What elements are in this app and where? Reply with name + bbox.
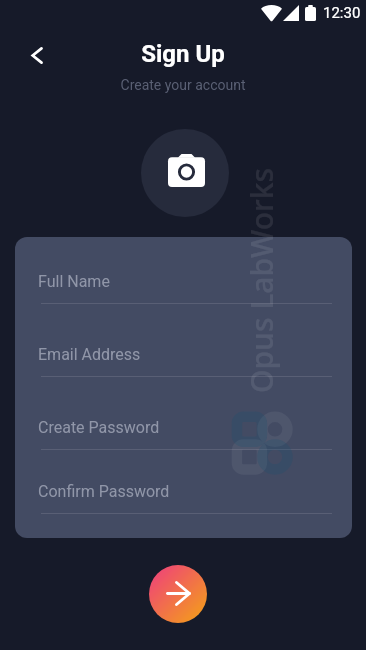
button[interactable]: Full Name [38, 259, 331, 303]
button[interactable]: Next [149, 565, 207, 623]
button[interactable]: Email Address [38, 332, 331, 376]
button[interactable]: Add profile photo [141, 129, 229, 217]
staticText: 12:30 [323, 4, 361, 22]
staticText: Email Address [38, 345, 141, 364]
button[interactable]: Back [22, 40, 52, 70]
staticText: Create Password [38, 418, 160, 437]
staticText: Confirm Password [38, 482, 170, 501]
button[interactable]: Create Password [38, 405, 331, 449]
staticText: Sign Up [0, 40, 366, 68]
staticText: Full Name [38, 272, 110, 291]
staticText: Create your account [0, 77, 366, 93]
button[interactable]: Confirm Password [38, 469, 331, 513]
